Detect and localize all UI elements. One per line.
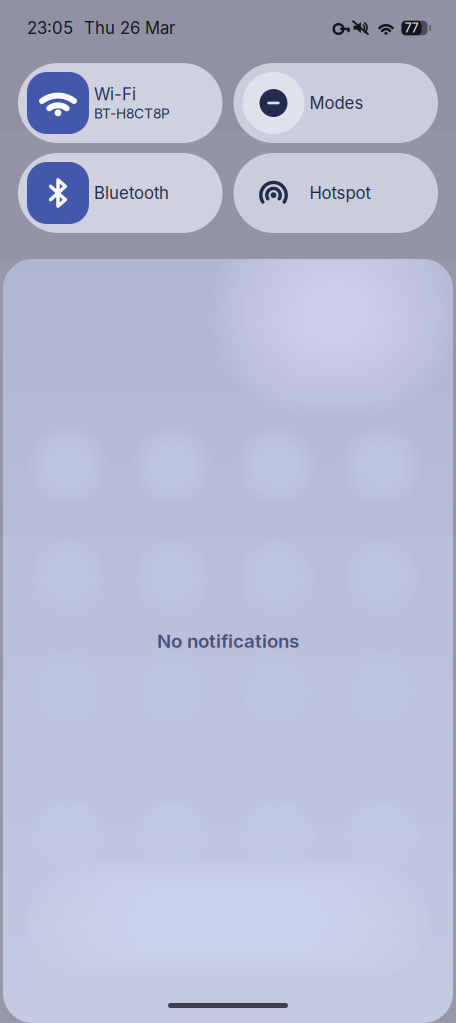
staticText: Hotspot xyxy=(309,183,370,203)
button[interactable]: Hotspot xyxy=(233,153,438,233)
staticText: Wi-Fi xyxy=(94,84,136,104)
staticText: Bluetooth xyxy=(94,183,169,203)
button[interactable]: Wi-Fi xyxy=(18,63,222,143)
staticText: 77 xyxy=(404,20,418,36)
staticText: 23:05 xyxy=(27,18,73,38)
staticText: Modes xyxy=(309,93,363,113)
button[interactable]: Bluetooth xyxy=(18,153,222,233)
staticText: Thu 26 Mar xyxy=(84,18,175,38)
staticText: BT-H8CT8P xyxy=(94,105,170,122)
staticText: No notifications xyxy=(157,630,299,652)
button[interactable]: Modes xyxy=(233,63,438,143)
